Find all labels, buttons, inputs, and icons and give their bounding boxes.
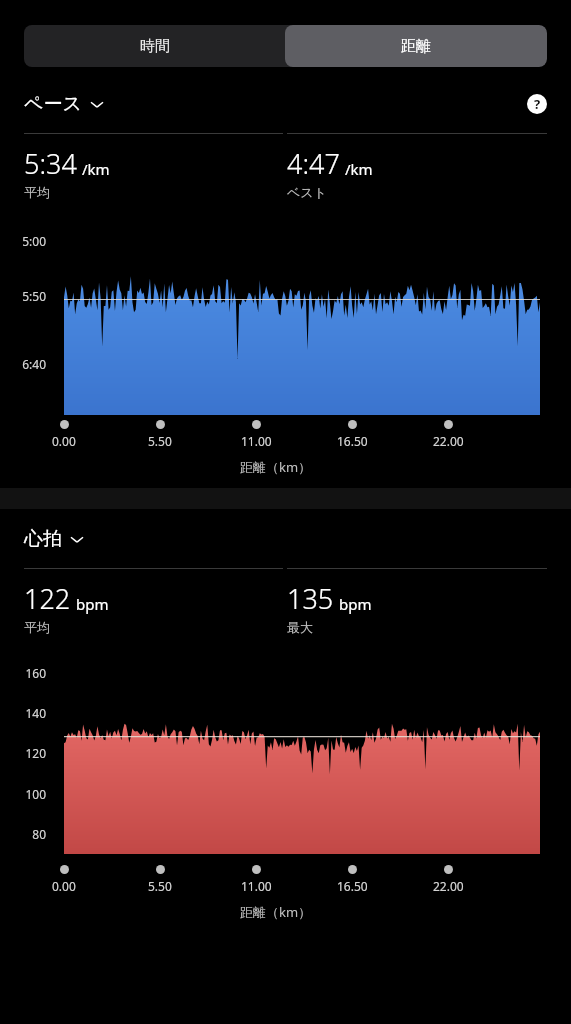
staticText: /km (345, 159, 373, 179)
staticText: 心拍 (24, 527, 62, 551)
staticText: 時間 (140, 37, 170, 56)
staticText: 距離（km） (0, 903, 551, 921)
button[interactable]: ペース (24, 92, 104, 116)
staticText: 5.50 (148, 878, 172, 894)
staticText: ベスト (287, 184, 327, 200)
staticText: 0.00 (52, 433, 76, 449)
staticText: 6:40 (0, 356, 46, 372)
staticText: 距離（km） (0, 458, 551, 476)
staticText: 4:47 (287, 145, 340, 182)
staticText: 5:34 (24, 145, 77, 182)
staticText: bpm (76, 594, 109, 614)
staticText: 5.50 (148, 433, 172, 449)
staticText: 5:00 (0, 233, 46, 249)
staticText: 135 (287, 580, 334, 617)
button[interactable]: 心拍 (24, 527, 84, 551)
staticText: 距離 (401, 37, 431, 56)
staticText: 122 (24, 580, 71, 617)
button[interactable]: ヘルプ (527, 94, 547, 114)
staticText: 0.00 (52, 878, 76, 894)
staticText: 16.50 (337, 433, 368, 449)
staticText: 11.00 (241, 433, 272, 449)
staticText: 140 (0, 705, 46, 721)
staticText: 160 (0, 665, 46, 681)
staticText: 平均 (24, 619, 50, 635)
staticText: 22.00 (433, 433, 464, 449)
staticText: ペース (24, 92, 82, 116)
button[interactable]: 距離 (285, 25, 547, 67)
staticText: 11.00 (241, 878, 272, 894)
staticText: 120 (0, 745, 46, 761)
staticText: 22.00 (433, 878, 464, 894)
staticText: 100 (0, 786, 46, 802)
staticText: 16.50 (337, 878, 368, 894)
staticText: 最大 (287, 619, 313, 635)
button[interactable]: 時間 (24, 25, 285, 67)
staticText: /km (82, 159, 110, 179)
staticText: 80 (0, 826, 46, 842)
staticText: bpm (339, 594, 372, 614)
staticText: 平均 (24, 184, 50, 200)
staticText: ? (534, 95, 541, 113)
staticText: 5:50 (0, 288, 46, 304)
